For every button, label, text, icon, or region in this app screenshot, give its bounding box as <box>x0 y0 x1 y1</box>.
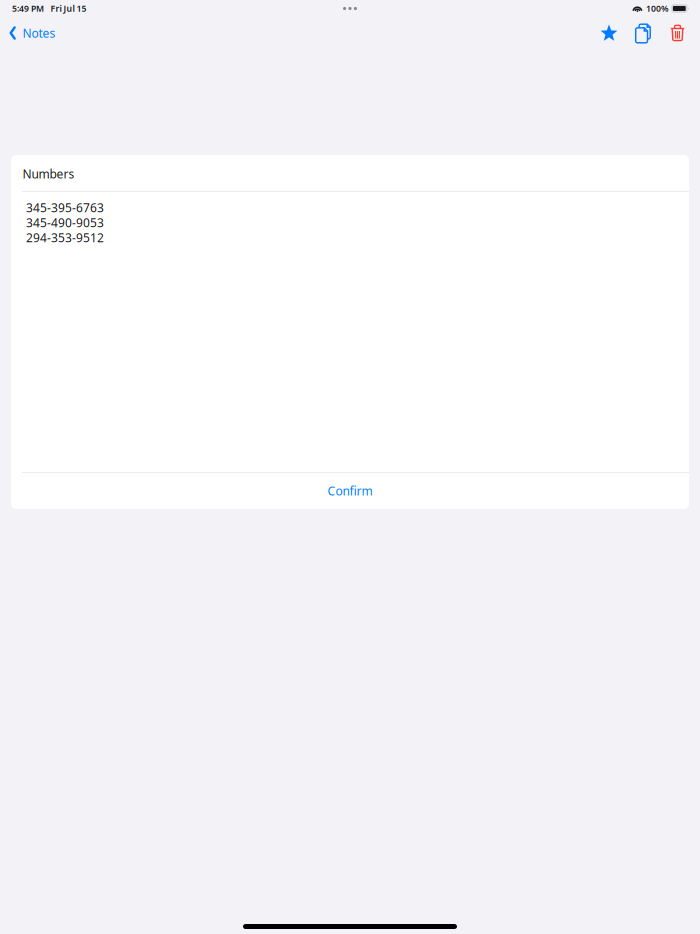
staticText: 345-395-6763 <box>26 200 104 216</box>
staticText: Notes <box>22 25 55 41</box>
button[interactable]: Favorite <box>594 18 624 48</box>
staticText: Numbers <box>22 166 74 182</box>
staticText: Fri Jul 15 <box>50 3 86 14</box>
button[interactable]: Confirm <box>11 473 689 509</box>
button[interactable]: Copy <box>628 18 658 48</box>
button[interactable]: Delete <box>662 18 692 48</box>
staticText: 100% <box>646 3 669 14</box>
staticText: 5:49 PM <box>12 3 44 14</box>
staticText: Confirm <box>327 483 372 499</box>
button[interactable]: Notes <box>0 18 65 48</box>
staticText: 345-490-9053 <box>26 215 104 231</box>
staticText: 294-353-9512 <box>26 230 104 245</box>
